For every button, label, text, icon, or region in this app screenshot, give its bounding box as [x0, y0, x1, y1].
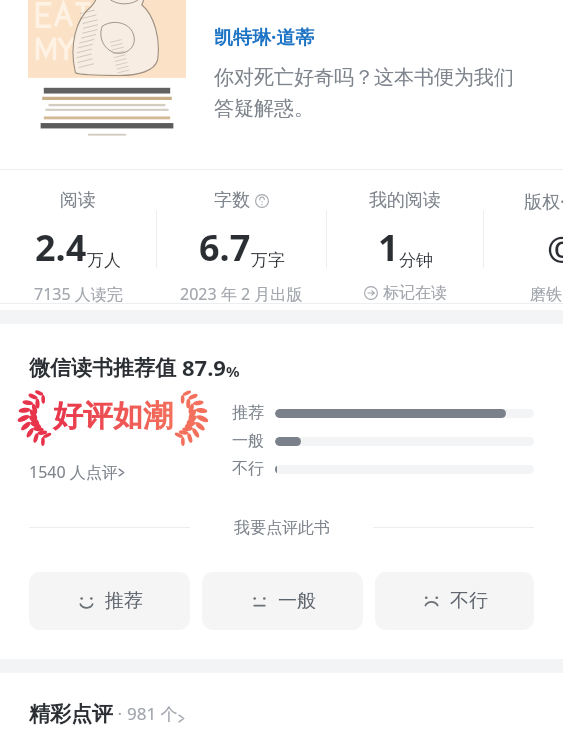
staticText: 推荐 — [232, 403, 264, 423]
staticText: 万字 — [251, 250, 285, 271]
staticText: 分钟 — [399, 250, 433, 271]
staticText: 万人 — [87, 250, 121, 271]
staticText: 凯特琳·道蒂 — [214, 24, 315, 50]
button[interactable]: 凯特琳·道蒂 — [214, 24, 315, 50]
staticText: 字数 — [214, 189, 250, 212]
staticText: 一般 — [232, 431, 264, 451]
staticText: 我的阅读 — [369, 189, 441, 212]
staticText: 精彩点评 — [29, 701, 113, 727]
staticText: 不行 — [232, 459, 264, 479]
staticText: % — [226, 361, 240, 381]
staticText: 87.9 — [182, 352, 226, 382]
staticText: 不行 — [450, 589, 488, 613]
button[interactable]: 精彩点评 — [29, 701, 185, 727]
button[interactable]: 阅读 — [0, 170, 156, 303]
staticText: 1 — [378, 223, 399, 272]
button[interactable]: 1540 人点评 — [29, 461, 125, 483]
staticText: © — [547, 225, 563, 274]
staticText: 6.7 — [199, 223, 251, 272]
staticText: 一般 — [278, 589, 316, 613]
button[interactable]: 不行 — [375, 572, 534, 630]
staticText: 7135 人读完 — [34, 283, 123, 303]
staticText: 2.4 — [35, 223, 87, 272]
staticText: 好评如潮 — [53, 397, 173, 435]
staticText: 981 个 — [127, 702, 178, 725]
button[interactable]: 字数 — [157, 170, 326, 303]
button[interactable]: 推荐 — [29, 572, 190, 630]
staticText: 阅读 — [60, 189, 96, 212]
button[interactable]: 好评如潮 — [27, 393, 199, 439]
staticText: · — [113, 702, 127, 725]
staticText: 标记在读 — [383, 283, 447, 303]
button[interactable]: 一般 — [202, 572, 363, 630]
staticText: 你对死亡好奇吗？这本书便为我们答疑解惑。 — [214, 65, 526, 121]
staticText: 1540 人点评 — [29, 461, 118, 483]
button[interactable]: 我的阅读 — [327, 170, 483, 303]
staticText: 版权·出版 — [524, 189, 563, 214]
staticText: 推荐 — [105, 589, 143, 613]
staticText: 磨铁图书 — [530, 285, 563, 303]
staticText: 2023 年 2 月出版 — [180, 283, 303, 303]
staticText: 微信读书推荐值 — [29, 353, 182, 382]
button[interactable]: 版权·出版 — [484, 170, 563, 303]
staticText: 我要点评此书 — [234, 518, 330, 538]
